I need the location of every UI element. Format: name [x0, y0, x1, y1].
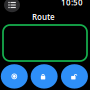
- staticText: 10:50: [61, 0, 83, 8]
- button[interactable]: Lock: [31, 64, 58, 89]
- button[interactable]: Unlock: [61, 64, 88, 89]
- button[interactable]: Menu: [4, 0, 20, 12]
- button[interactable]: Current location: [1, 64, 28, 89]
- staticText: Route: [32, 12, 55, 22]
